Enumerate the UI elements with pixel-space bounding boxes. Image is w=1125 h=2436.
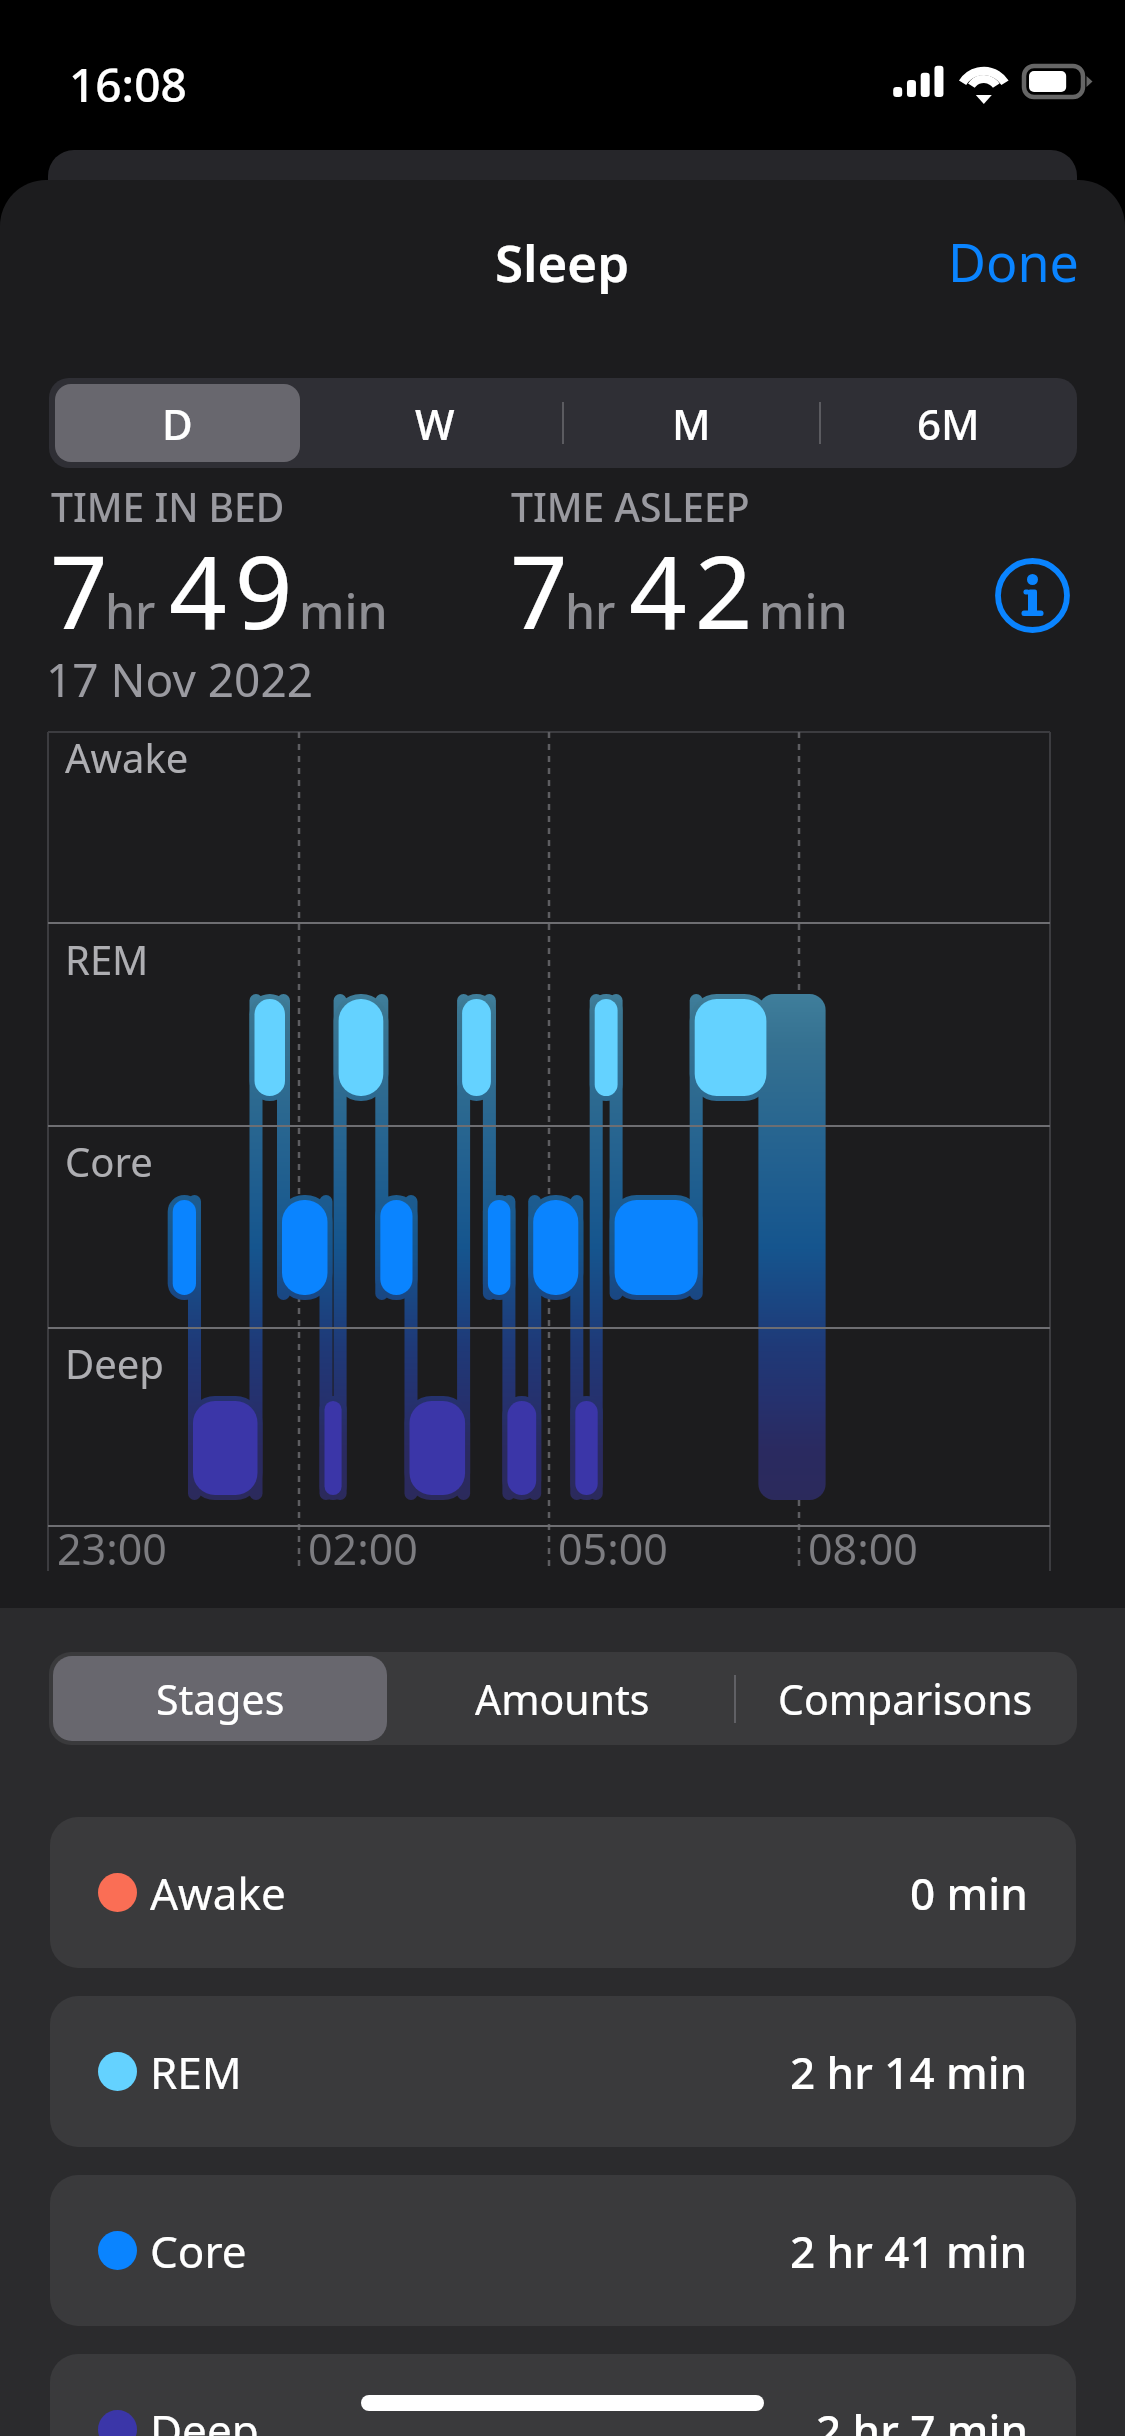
staticText: TIME IN BED xyxy=(51,480,285,533)
staticText: Sleep xyxy=(495,227,630,296)
staticText: 42 xyxy=(629,521,761,659)
button[interactable]: Deep xyxy=(50,2354,1076,2436)
button[interactable]: 6M xyxy=(820,378,1077,468)
button[interactable]: D xyxy=(49,378,306,468)
staticText: 08:00 xyxy=(808,1519,918,1578)
button[interactable]: Core xyxy=(50,2175,1076,2326)
staticText: min xyxy=(759,578,848,643)
staticText: REM xyxy=(150,2042,242,2102)
button[interactable]: Stages xyxy=(49,1652,391,1745)
staticText: Deep xyxy=(65,1336,164,1390)
staticText: Stages xyxy=(156,1671,285,1727)
staticText: Awake xyxy=(150,1863,286,1923)
staticText: 02:00 xyxy=(308,1519,418,1578)
staticText: Core xyxy=(65,1134,153,1188)
staticText: 49 xyxy=(169,521,301,659)
staticText: REM xyxy=(65,932,149,986)
staticText: 23:00 xyxy=(57,1519,167,1578)
staticText: 2 hr 14 min xyxy=(790,2042,1028,2102)
staticText: TIME ASLEEP xyxy=(511,480,750,533)
staticText: 0 min xyxy=(910,1863,1028,1923)
staticText: D xyxy=(162,395,193,452)
staticText: hr xyxy=(565,578,616,643)
staticText: Comparisons xyxy=(778,1671,1033,1727)
other: Sleep stage chart for 17 Nov 2022, 23:00… xyxy=(0,0,1125,1600)
other: Cellular, Wi-Fi and battery status xyxy=(885,55,1105,105)
staticText: Awake xyxy=(65,730,189,784)
staticText: Deep xyxy=(150,2400,259,2436)
staticText: 17 Nov 2022 xyxy=(46,648,314,711)
staticText: 7 xyxy=(510,521,576,659)
staticText: 16:08 xyxy=(69,53,187,116)
staticText: W xyxy=(415,395,455,452)
button[interactable]: M xyxy=(563,378,820,468)
button[interactable]: Comparisons xyxy=(734,1652,1077,1745)
staticText: 7 xyxy=(50,521,116,659)
button[interactable]: Amounts xyxy=(391,1652,734,1745)
staticText: 2 hr 7 min xyxy=(816,2400,1028,2436)
button[interactable]: About sleep stages xyxy=(995,558,1070,633)
staticText: 6M xyxy=(917,395,980,452)
staticText: 05:00 xyxy=(558,1519,668,1578)
button[interactable]: Awake xyxy=(50,1817,1076,1968)
staticText: min xyxy=(299,578,388,643)
staticText: M xyxy=(672,395,711,452)
staticText: Core xyxy=(150,2221,247,2281)
button[interactable]: W xyxy=(306,378,563,468)
button[interactable]: REM xyxy=(50,1996,1076,2147)
staticText: 2 hr 41 min xyxy=(790,2221,1028,2281)
button[interactable]: Done xyxy=(902,208,1125,315)
staticText: hr xyxy=(105,578,156,643)
staticText: Done xyxy=(948,226,1079,297)
staticText: Amounts xyxy=(475,1671,650,1727)
